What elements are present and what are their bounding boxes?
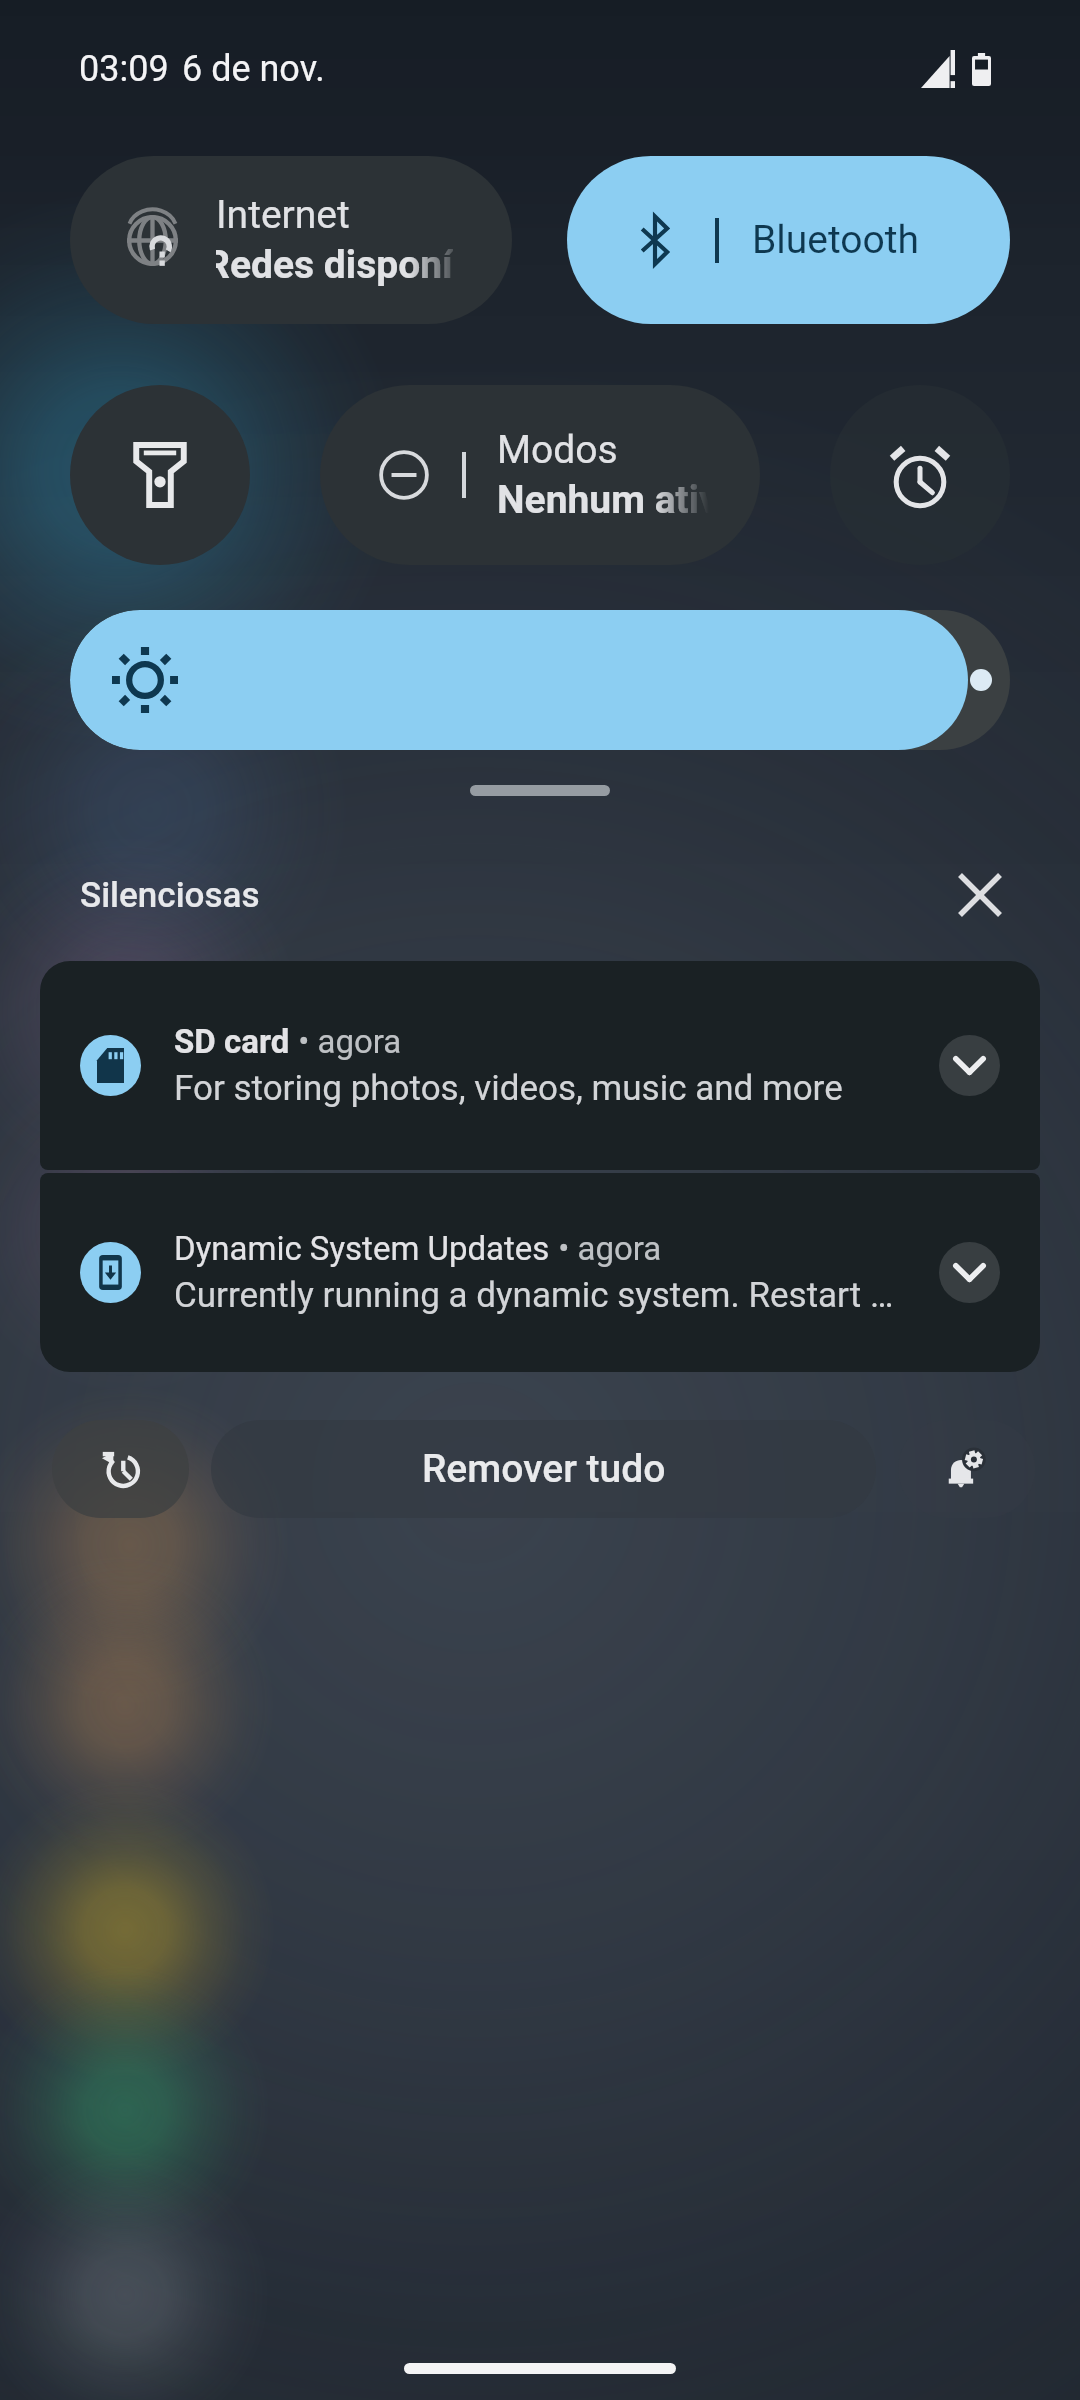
- staticText: Redes disponíveis: [205, 242, 453, 288]
- staticText: Bluetooth: [752, 217, 920, 263]
- button[interactable]: Alarme: [830, 385, 1010, 565]
- button[interactable]: Expandir: [939, 1035, 1000, 1096]
- button[interactable]: Lanterna: [70, 385, 250, 565]
- staticText: 6 de nov.: [182, 48, 325, 90]
- button[interactable]: Expandir: [939, 1242, 1000, 1303]
- button[interactable]: Bluetooth: [567, 156, 1010, 324]
- staticText: Modos: [497, 427, 618, 473]
- staticText: Dynamic System Updates: [174, 1229, 550, 1268]
- staticText: Internet: [216, 192, 350, 238]
- staticText: For storing photos, videos, music and mo…: [174, 1068, 843, 1109]
- button[interactable]: Configurações de notificação: [898, 1420, 1035, 1518]
- button[interactable]: Histórico: [52, 1420, 189, 1518]
- staticText: SD card: [174, 1022, 290, 1061]
- staticText: Remover tudo: [422, 1446, 666, 1492]
- button[interactable]: Internet: [70, 156, 512, 324]
- button[interactable]: Brilho: [70, 610, 1010, 750]
- staticText: Silenciosas: [80, 875, 260, 916]
- staticText: Currently running a dynamic system. Rest…: [174, 1275, 894, 1316]
- staticText: 03:09: [79, 48, 169, 90]
- button[interactable]: Modos: [320, 385, 760, 565]
- button[interactable]: Remover tudo: [211, 1420, 876, 1518]
- button[interactable]: Fechar: [942, 857, 1018, 933]
- button[interactable]: SD card: [40, 961, 1040, 1170]
- staticText: Nenhum ativado: [497, 477, 709, 523]
- button[interactable]: Dynamic System Updates: [40, 1173, 1040, 1372]
- staticText: • agora: [550, 1229, 662, 1268]
- staticText: • agora: [290, 1022, 402, 1061]
